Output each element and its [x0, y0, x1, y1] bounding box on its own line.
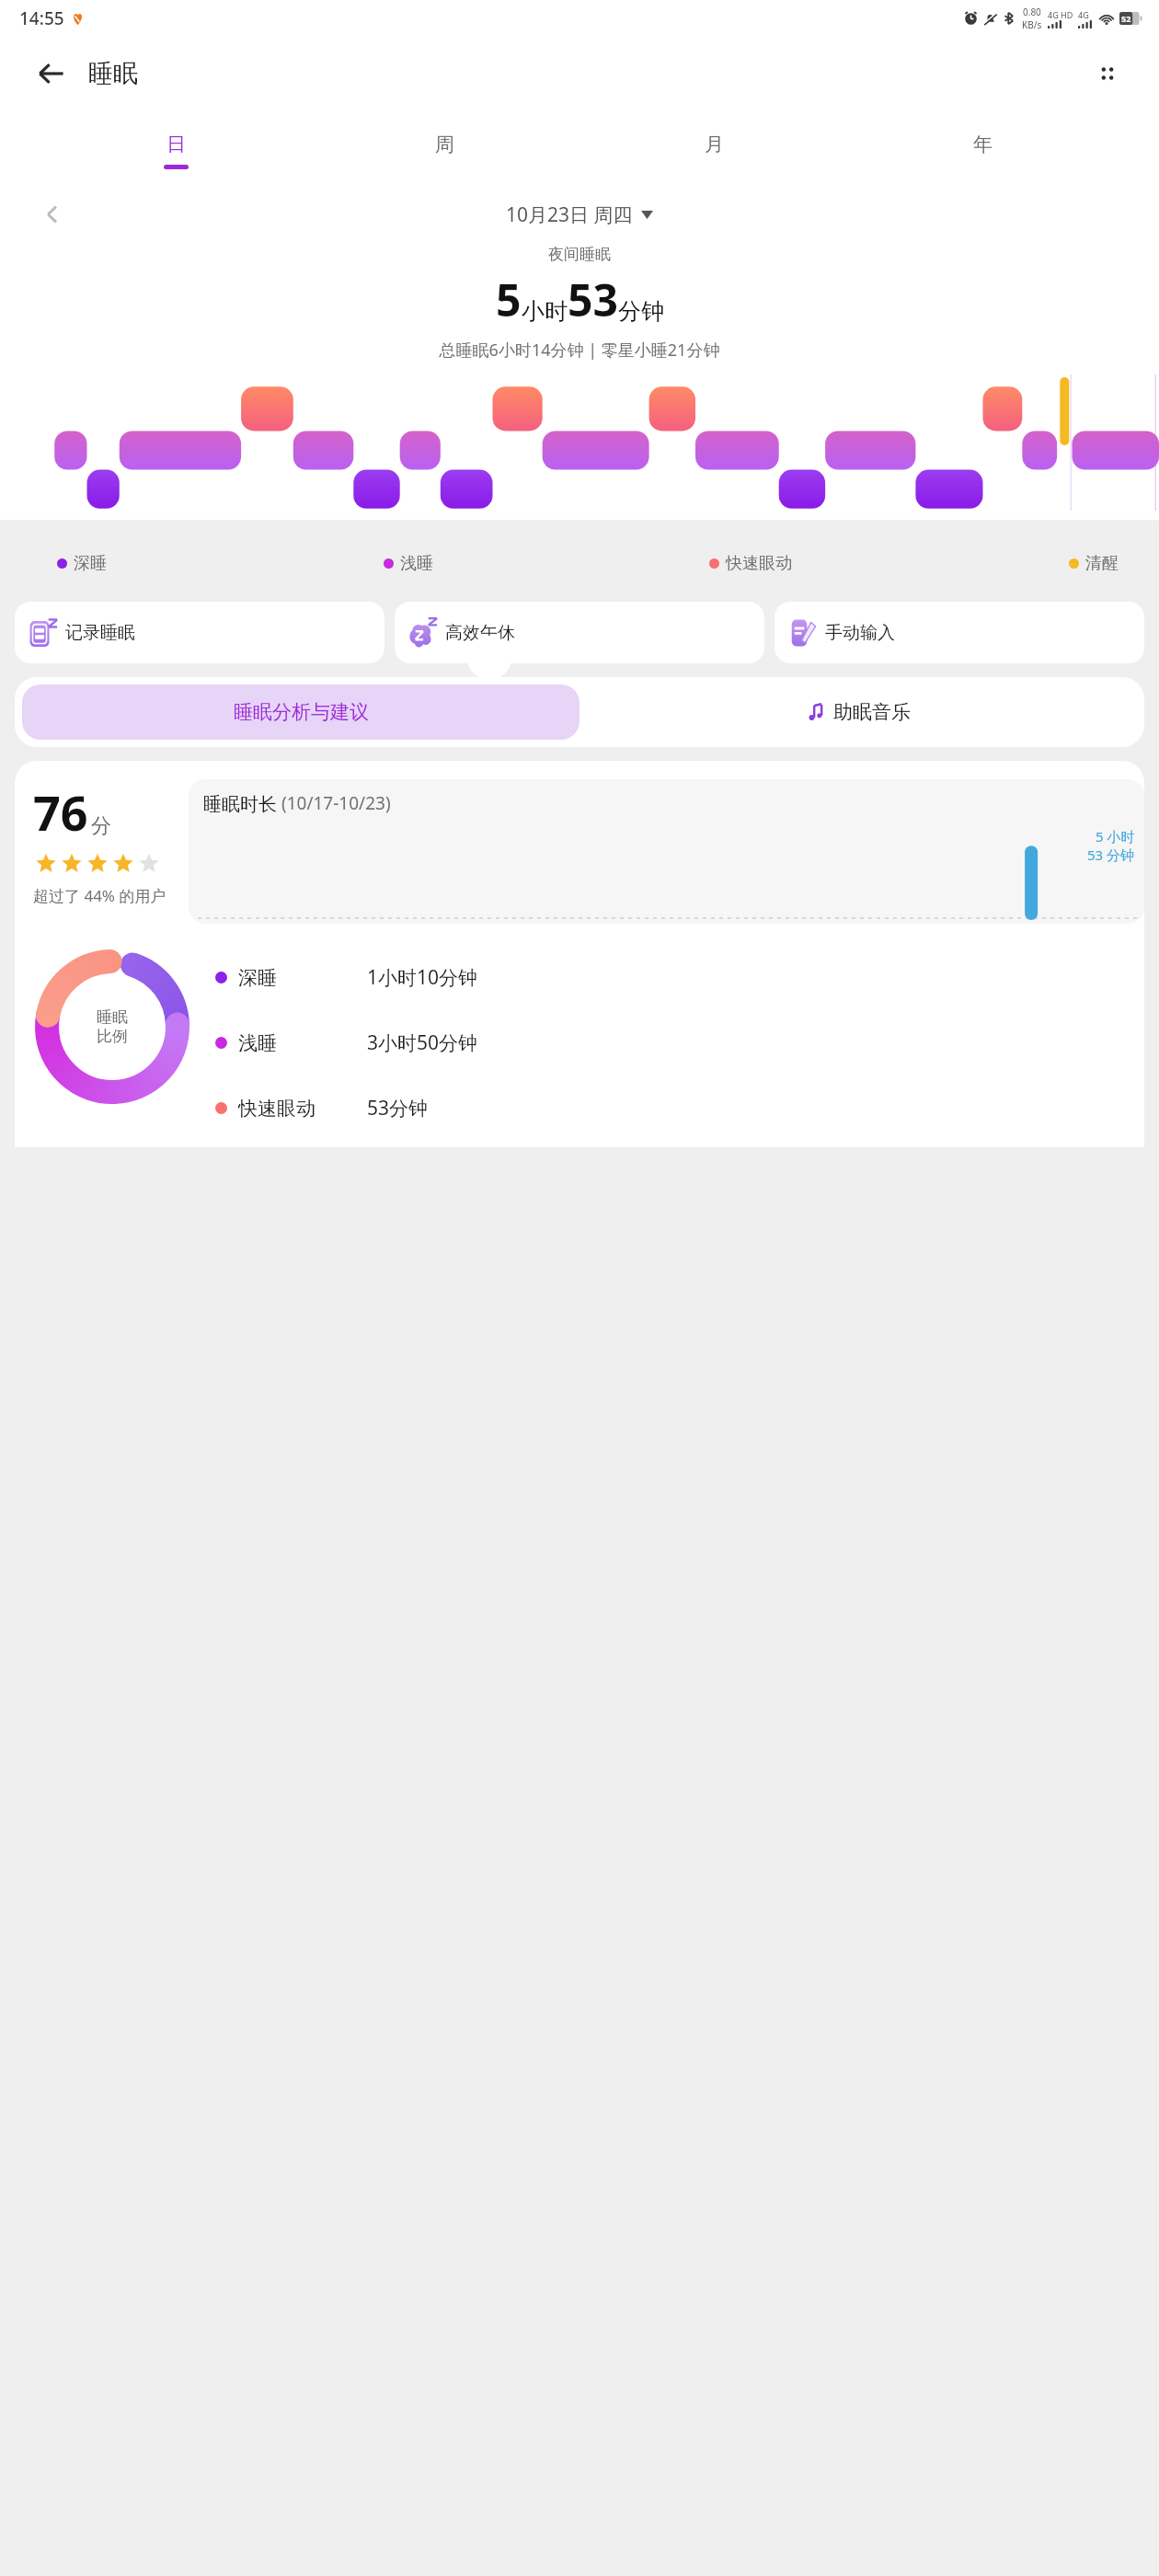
- staticText: 5 小时: [1096, 827, 1135, 845]
- staticText: 浅睡: [400, 553, 433, 574]
- staticText: 分: [91, 813, 111, 839]
- staticText: 高效午休: [445, 622, 515, 644]
- staticText: 快速眼动: [238, 1097, 367, 1121]
- staticText: 超过了 44% 的用户: [33, 885, 166, 906]
- staticText: 3小时50分钟: [367, 1029, 478, 1056]
- button[interactable]: 助眠音乐: [579, 684, 1137, 740]
- button[interactable]: Back: [28, 50, 75, 98]
- staticText: 浅睡: [238, 1031, 367, 1055]
- staticText: 月: [705, 132, 724, 156]
- staticText: 4G: [1078, 9, 1089, 20]
- staticText: 52: [1121, 13, 1131, 24]
- staticText: 夜间睡眠: [0, 245, 1159, 264]
- button[interactable]: 手动输入: [775, 602, 1144, 663]
- button[interactable]: Previous day: [31, 193, 74, 236]
- staticText: (10/17-10/23): [281, 791, 391, 815]
- staticText: 睡眠: [88, 58, 138, 89]
- staticText: 比例: [97, 1027, 128, 1046]
- staticText: 深睡: [74, 553, 107, 574]
- staticText: 小时: [522, 297, 568, 326]
- staticText: 76: [33, 779, 88, 845]
- button[interactable]: Add sleep record: [467, 636, 511, 680]
- staticText: 日: [166, 132, 186, 156]
- staticText: 快速眼动: [726, 553, 792, 574]
- staticText: 53: [568, 270, 618, 329]
- staticText: 睡眠时长: [203, 793, 277, 816]
- staticText: 53 分钟: [1087, 845, 1135, 864]
- staticText: 53分钟: [367, 1095, 429, 1121]
- button[interactable]: 10月23日 周四: [506, 201, 653, 228]
- button[interactable]: More options: [1084, 50, 1131, 98]
- staticText: 分钟: [618, 297, 664, 326]
- staticText: 5: [496, 270, 522, 329]
- staticText: 睡眠分析与建议: [234, 700, 369, 724]
- staticText: 14:55: [19, 6, 64, 30]
- staticText: 手动输入: [825, 622, 895, 644]
- button[interactable]: 年: [961, 129, 1004, 173]
- button[interactable]: 周: [423, 129, 466, 173]
- staticText: 年: [973, 132, 993, 156]
- button[interactable]: 睡眠时长: [189, 779, 1144, 924]
- staticText: 1小时10分钟: [367, 964, 478, 991]
- staticText: 0.80: [1023, 6, 1041, 18]
- staticText: 4G HD: [1048, 9, 1073, 20]
- button[interactable]: 月: [693, 129, 736, 173]
- staticText: 周: [435, 132, 454, 156]
- staticText: 记录睡眠: [65, 622, 135, 644]
- staticText: 清醒: [1085, 553, 1119, 574]
- staticText: 10月23日 周四: [506, 201, 633, 228]
- button[interactable]: 日: [155, 129, 198, 173]
- staticText: 总睡眠6小时14分钟 | 零星小睡21分钟: [0, 339, 1159, 362]
- button[interactable]: 高效午休: [395, 602, 764, 663]
- staticText: KB/s: [1022, 18, 1042, 31]
- staticText: 助眠音乐: [833, 700, 911, 724]
- button[interactable]: 睡眠分析与建议: [22, 684, 579, 740]
- staticText: 深睡: [238, 966, 367, 990]
- button[interactable]: 记录睡眠: [15, 602, 384, 663]
- staticText: 睡眠: [97, 1007, 128, 1027]
